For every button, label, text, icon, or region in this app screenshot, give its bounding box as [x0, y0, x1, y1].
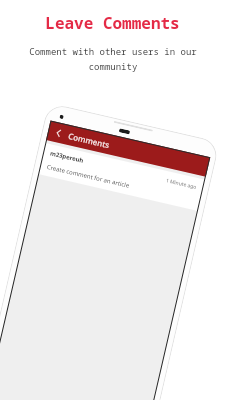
- button[interactable]: Back: [52, 125, 67, 141]
- staticText: Leave Comments: [45, 12, 180, 34]
- staticText: Comment with other users in our communit…: [18, 45, 208, 72]
- staticText: Create comment for an article: [46, 163, 131, 190]
- staticText: Comments: [67, 130, 111, 150]
- staticText: 1 Minute ago: [165, 177, 197, 191]
- button[interactable]: m23pereuh: [38, 143, 205, 211]
- staticText: m23pereuh: [49, 149, 85, 165]
